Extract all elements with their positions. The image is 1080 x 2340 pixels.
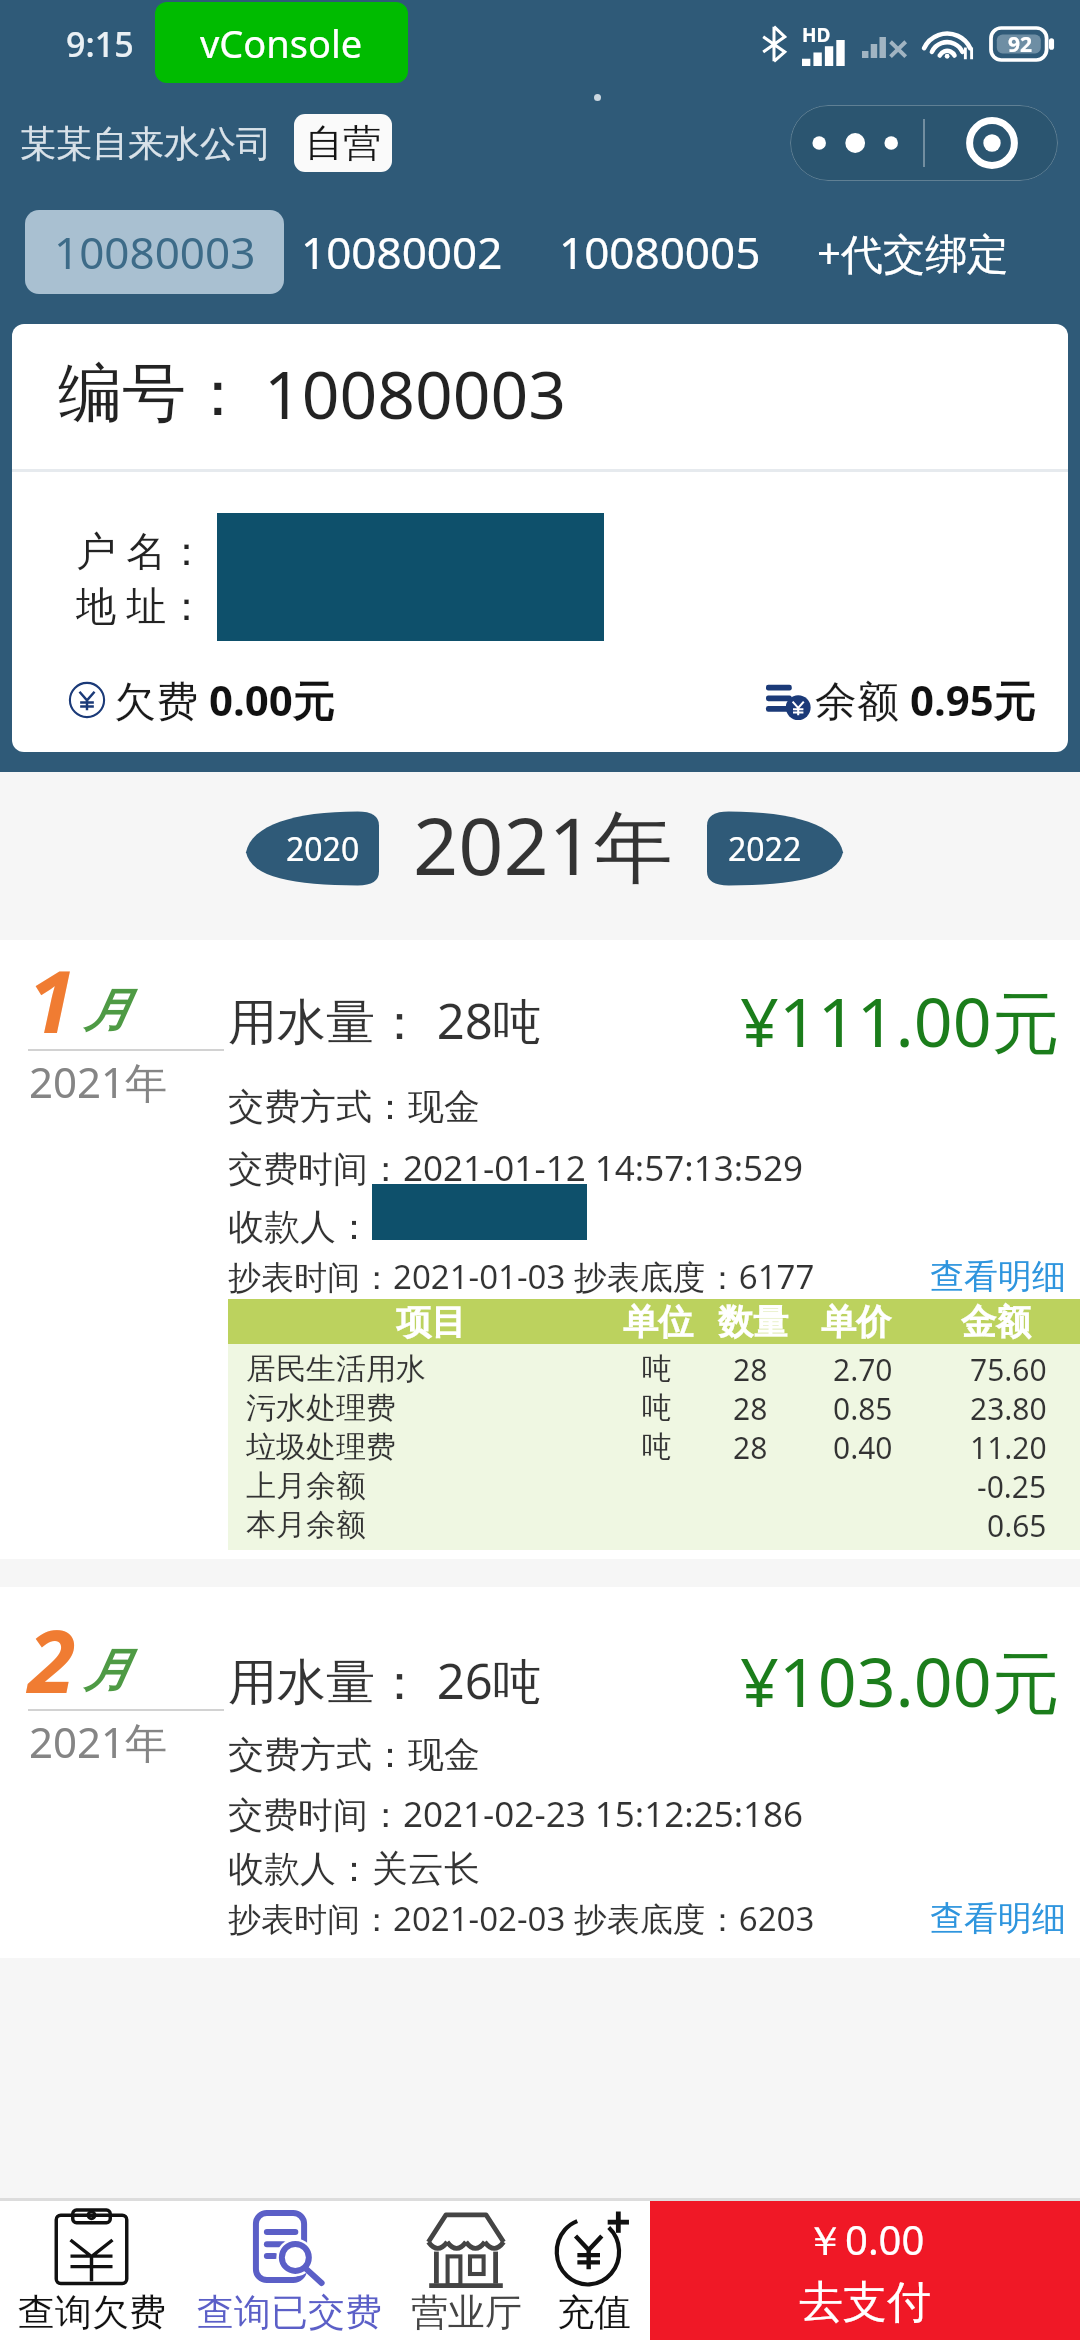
staticText: 28 — [733, 1427, 768, 1466]
staticText: 23.80 — [970, 1388, 1047, 1427]
staticText: 户 名： — [76, 522, 207, 577]
staticText: 抄表时间：2021-01-03 抄表底度：6177 — [228, 1254, 815, 1299]
staticText: ¥103.00元 — [740, 1634, 1060, 1727]
staticText: 75.60 — [970, 1349, 1047, 1388]
staticText: 28 — [733, 1349, 768, 1388]
staticText: 某某自来水公司 — [20, 121, 272, 166]
staticText: 查询已交费 — [197, 2289, 382, 2336]
staticText: 自营 — [305, 119, 381, 167]
staticText: ¥111.00元 — [740, 974, 1060, 1067]
staticText: 单位 — [623, 1300, 693, 1344]
button[interactable]: 充值 — [537, 2201, 650, 2340]
staticText: 营业厅 — [411, 2289, 522, 2336]
button[interactable]: 编号： — [12, 324, 1068, 752]
staticText: 去支付 — [799, 2275, 931, 2330]
staticText: 用水量： 28吨 — [228, 987, 542, 1054]
staticText: 查看明细 — [930, 1897, 1066, 1940]
staticText: 金额 — [961, 1300, 1031, 1344]
staticText: 查看明细 — [930, 1255, 1066, 1298]
staticText: 本月余额 — [246, 1506, 366, 1544]
button[interactable]: 查看明细 — [930, 1897, 1066, 1940]
staticText: 1 — [28, 941, 76, 1058]
staticText: 地 址： — [76, 577, 207, 632]
button[interactable]: 查询欠费 — [0, 2201, 183, 2340]
staticText: -0.25 — [977, 1466, 1047, 1505]
staticText: 交费方式：现金 — [228, 1732, 480, 1777]
staticText: 用水量： 26吨 — [228, 1647, 542, 1714]
staticText: 2021年 — [29, 1053, 168, 1110]
button[interactable]: More options — [790, 105, 923, 181]
staticText: 2021年 — [413, 791, 673, 899]
staticText: 0.95元 — [910, 671, 1036, 728]
staticText: 11.20 — [970, 1427, 1047, 1466]
button[interactable]: 2022 — [707, 810, 843, 887]
staticText: 交费时间：2021-02-23 15:12:25:186 — [228, 1790, 804, 1838]
staticText: 月 — [84, 982, 130, 1040]
staticText: +代交绑定 — [817, 224, 1010, 281]
staticText: 居民生活用水 — [246, 1350, 426, 1388]
staticText: 2021年 — [29, 1713, 168, 1770]
staticText: 余额 — [815, 671, 910, 728]
staticText: 充值 — [557, 2289, 631, 2336]
button[interactable]: 2020 — [246, 810, 379, 887]
staticText: 9:15 — [66, 21, 134, 67]
staticText: 0.40 — [833, 1427, 893, 1466]
staticText: 0.65 — [987, 1505, 1047, 1544]
staticText: 吨 — [642, 1389, 672, 1427]
staticText: 收款人： — [228, 1204, 372, 1249]
button[interactable]: Close mini program — [925, 105, 1058, 181]
staticText: vConsole — [200, 17, 363, 69]
button[interactable]: 查看明细 — [930, 1255, 1066, 1298]
staticText: 2020 — [286, 827, 360, 871]
button[interactable]: 营业厅 — [395, 2201, 537, 2340]
staticText: 单价 — [821, 1300, 891, 1344]
staticText: 10080002 — [301, 222, 503, 282]
button[interactable]: 10080003 — [25, 210, 284, 294]
staticText: 交费时间：2021-01-12 14:57:13:529 — [228, 1144, 804, 1192]
staticText: 10080003 — [264, 348, 567, 438]
button[interactable]: 10080005 — [542, 210, 778, 294]
button[interactable]: +代交绑定 — [802, 210, 1025, 294]
staticText: 上月余额 — [246, 1467, 366, 1505]
button[interactable]: 10080002 — [284, 210, 520, 294]
staticText: 抄表时间：2021-02-03 抄表底度：6203 — [228, 1896, 815, 1941]
staticText: 数量 — [718, 1300, 788, 1344]
staticText: 0.85 — [833, 1388, 893, 1427]
staticText: 10080003 — [54, 222, 256, 282]
staticText: 交费方式：现金 — [228, 1084, 480, 1129]
staticText: 收款人：关云长 — [228, 1846, 480, 1891]
staticText: 吨 — [642, 1350, 672, 1388]
staticText: 2.70 — [833, 1349, 893, 1388]
staticText: 污水处理费 — [246, 1389, 396, 1427]
staticText: HD — [802, 22, 831, 48]
button[interactable]: 查询已交费 — [183, 2201, 395, 2340]
staticText: 项目 — [396, 1300, 466, 1344]
staticText: 垃圾处理费 — [246, 1428, 396, 1466]
staticText: 2022 — [728, 827, 802, 871]
button[interactable]: ￥0.00 — [650, 2201, 1080, 2340]
staticText: 月 — [84, 1642, 130, 1700]
staticText: 2 — [28, 1601, 76, 1718]
button[interactable]: 自营 — [294, 114, 392, 172]
button[interactable]: vConsole — [155, 2, 408, 83]
staticText: 编号： — [58, 353, 250, 434]
staticText: 28 — [733, 1388, 768, 1427]
staticText: 92 — [1008, 30, 1033, 59]
staticText: 查询欠费 — [18, 2289, 166, 2336]
staticText: ￥0.00 — [805, 2212, 925, 2267]
staticText: 0.00元 — [209, 671, 335, 728]
staticText: 吨 — [642, 1428, 672, 1466]
staticText: 10080005 — [559, 222, 761, 282]
staticText: 欠费 — [114, 671, 209, 728]
